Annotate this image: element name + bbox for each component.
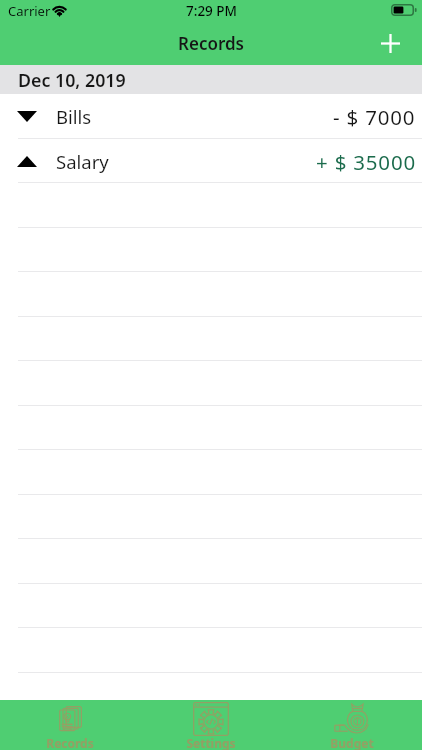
staticText: Records [178,32,244,55]
staticText: 7:29 PM [186,2,237,20]
staticText: + $ 35000 [316,148,416,176]
button[interactable]: Bills [0,94,422,139]
staticText: Settings [186,735,236,750]
button[interactable]: Salary [0,139,422,184]
staticText: Budget [330,735,374,750]
button[interactable]: Settings [140,700,281,750]
staticText: Salary [56,149,109,174]
staticText: Carrier [8,2,51,20]
button[interactable]: Records [0,700,140,750]
button[interactable]: Budget [281,700,422,750]
staticText: Bills [56,104,92,129]
staticText: - $ 7000 [333,103,416,131]
button[interactable]: Add record [368,22,412,65]
staticText: Records [46,735,94,750]
staticText: Dec 10, 2019 [18,68,126,92]
